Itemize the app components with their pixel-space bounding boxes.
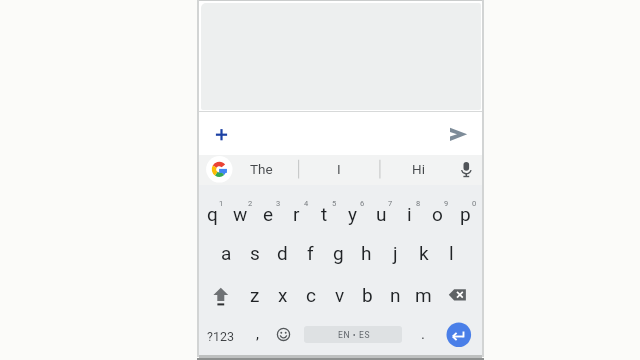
button[interactable]: e bbox=[255, 199, 282, 229]
button[interactable] bbox=[203, 281, 239, 309]
staticText: e bbox=[263, 203, 274, 225]
staticText: ?123 bbox=[207, 329, 234, 344]
staticText: , bbox=[256, 325, 259, 343]
staticText: 9 bbox=[444, 199, 449, 208]
staticText: n bbox=[390, 284, 401, 306]
staticText: EN • ES bbox=[338, 330, 371, 340]
staticText: The bbox=[250, 161, 273, 177]
button[interactable]: i bbox=[396, 199, 423, 229]
staticText: x bbox=[278, 284, 288, 306]
staticText: t bbox=[321, 203, 328, 225]
staticText: p bbox=[460, 203, 471, 225]
button[interactable] bbox=[446, 322, 472, 348]
button[interactable]: ?123 bbox=[200, 323, 240, 349]
button[interactable]: The bbox=[241, 156, 281, 182]
button[interactable]: l bbox=[438, 238, 465, 268]
button[interactable]: h bbox=[353, 238, 380, 268]
staticText: d bbox=[277, 242, 288, 264]
button[interactable]: u bbox=[368, 199, 395, 229]
staticText: k bbox=[419, 242, 429, 264]
button[interactable]: p bbox=[452, 199, 479, 229]
staticText: y bbox=[348, 203, 357, 225]
staticText: . bbox=[421, 325, 425, 343]
staticText: i bbox=[407, 203, 412, 225]
button[interactable]: o bbox=[424, 199, 451, 229]
button[interactable]: x bbox=[269, 280, 296, 310]
button[interactable]: , bbox=[247, 321, 267, 347]
button[interactable]: k bbox=[410, 238, 437, 268]
button[interactable]: f bbox=[297, 238, 324, 268]
button[interactable]: Hi bbox=[398, 156, 438, 182]
staticText: 8 bbox=[416, 199, 421, 208]
button[interactable] bbox=[446, 122, 471, 147]
staticText: f bbox=[307, 242, 314, 264]
staticText: j bbox=[393, 242, 398, 264]
button[interactable]: t bbox=[311, 199, 338, 229]
button[interactable]: c bbox=[297, 280, 324, 310]
staticText: u bbox=[376, 203, 387, 225]
staticText: c bbox=[306, 284, 316, 306]
staticText: 1 bbox=[219, 199, 224, 208]
staticText: Hi bbox=[412, 161, 425, 177]
staticText: I bbox=[337, 161, 341, 177]
button[interactable] bbox=[440, 281, 476, 309]
staticText: 0 bbox=[472, 199, 477, 208]
staticText: r bbox=[293, 203, 300, 225]
button[interactable] bbox=[210, 123, 234, 147]
button[interactable]: q bbox=[199, 199, 226, 229]
button[interactable]: v bbox=[326, 280, 353, 310]
staticText: l bbox=[449, 242, 454, 264]
button[interactable]: z bbox=[241, 280, 268, 310]
staticText: 5 bbox=[332, 199, 337, 208]
button[interactable]: w bbox=[227, 199, 254, 229]
staticText: o bbox=[432, 203, 443, 225]
button[interactable]: j bbox=[382, 238, 409, 268]
button[interactable]: s bbox=[241, 238, 268, 268]
button[interactable]: d bbox=[269, 238, 296, 268]
staticText: m bbox=[415, 284, 432, 306]
button[interactable]: I bbox=[319, 156, 359, 182]
staticText: s bbox=[250, 242, 260, 264]
button[interactable] bbox=[270, 322, 297, 348]
staticText: q bbox=[207, 203, 218, 225]
staticText: 6 bbox=[360, 199, 365, 208]
staticText: 7 bbox=[388, 199, 393, 208]
button[interactable]: b bbox=[354, 280, 381, 310]
staticText: 2 bbox=[248, 199, 253, 208]
staticText: a bbox=[221, 242, 232, 264]
staticText: 3 bbox=[276, 199, 281, 208]
staticText: v bbox=[335, 284, 345, 306]
button[interactable]: m bbox=[410, 280, 437, 310]
button[interactable]: y bbox=[339, 199, 366, 229]
staticText: w bbox=[233, 203, 248, 225]
button[interactable]: a bbox=[213, 238, 240, 268]
staticText: h bbox=[361, 242, 372, 264]
button[interactable] bbox=[303, 324, 402, 347]
button[interactable]: n bbox=[382, 280, 409, 310]
button[interactable]: . bbox=[413, 321, 433, 347]
button[interactable]: g bbox=[325, 238, 352, 268]
button[interactable] bbox=[206, 156, 233, 183]
staticText: b bbox=[362, 284, 373, 306]
staticText: g bbox=[333, 242, 344, 264]
staticText: 4 bbox=[304, 199, 309, 208]
button[interactable]: r bbox=[283, 199, 310, 229]
staticText: z bbox=[250, 284, 260, 306]
button[interactable] bbox=[453, 156, 480, 183]
